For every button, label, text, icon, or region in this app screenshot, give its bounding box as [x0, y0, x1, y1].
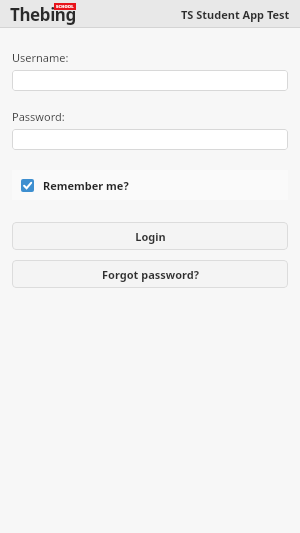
button[interactable]: Forgot password? [12, 260, 288, 288]
staticText: SCHOOL [56, 4, 74, 9]
button[interactable]: Thebing School home [10, 3, 76, 26]
staticText: Username: [12, 50, 69, 65]
staticText: Forgot password? [102, 267, 199, 282]
staticText: Password: [12, 109, 65, 124]
staticText: Remember me? [43, 178, 129, 193]
staticText: Thebing [10, 3, 76, 26]
staticText: TS Student App Test [181, 7, 290, 22]
button[interactable]: Remember me? [12, 170, 288, 200]
button[interactable]: Password input field [12, 129, 288, 150]
button[interactable]: Username input field [12, 70, 288, 91]
staticText: Login [135, 229, 166, 244]
button[interactable]: Login [12, 222, 288, 250]
